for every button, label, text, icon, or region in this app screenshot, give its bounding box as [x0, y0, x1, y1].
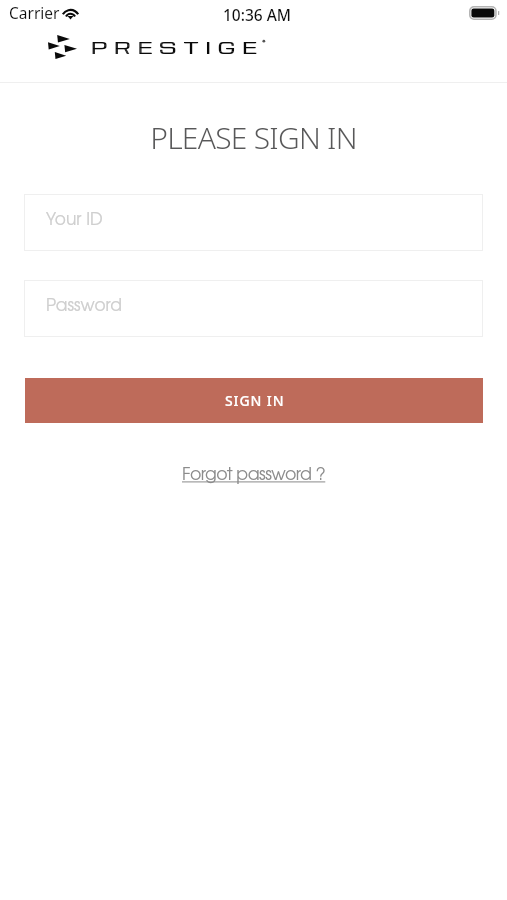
staticText: PRESTIGE [91, 36, 264, 58]
button[interactable]: Forgot password ? [182, 467, 326, 483]
button[interactable]: Your ID [24, 194, 483, 251]
staticText: 10:36 AM [223, 4, 292, 25]
button[interactable]: Password [24, 280, 483, 337]
staticText: PRESTIGE [92, 36, 265, 58]
staticText: Your ID [46, 212, 103, 228]
staticText: PLEASE SIGN IN [0, 117, 507, 158]
staticText: Password [46, 298, 122, 314]
staticText: SIGN IN [225, 391, 285, 410]
button[interactable]: SIGN IN [25, 378, 483, 423]
other: Battery [469, 6, 500, 20]
other: Wi-Fi [61, 6, 80, 20]
staticText: Carrier [9, 2, 60, 23]
